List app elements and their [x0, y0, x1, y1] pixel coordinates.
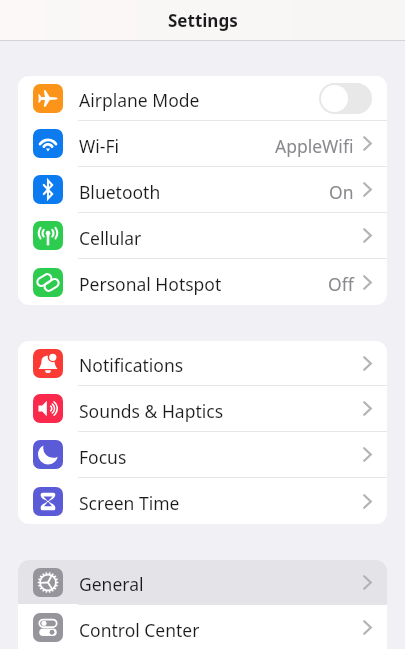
staticText: Airplane Mode	[79, 88, 200, 112]
button[interactable]: Notifications	[18, 341, 387, 385]
staticText: Personal Hotspot	[79, 272, 222, 296]
staticText: Cellular	[79, 226, 142, 250]
staticText: Sounds & Haptics	[79, 399, 224, 423]
staticText: General	[79, 572, 144, 596]
staticText: Screen Time	[79, 491, 180, 515]
staticText: AppleWifi	[275, 134, 354, 158]
staticText: Notifications	[79, 353, 184, 377]
staticText: Wi-Fi	[79, 134, 120, 158]
button[interactable]: Personal Hotspot	[18, 259, 387, 305]
staticText: Control Center	[79, 618, 200, 642]
button[interactable]: General	[18, 560, 387, 604]
button[interactable]: Screen Time	[18, 478, 387, 524]
staticText: Bluetooth	[79, 180, 161, 204]
button[interactable]: Control Center	[18, 605, 387, 649]
button[interactable]: Airplane Mode	[18, 76, 387, 120]
staticText: Settings	[168, 9, 238, 32]
button[interactable]: Wi-Fi	[18, 121, 387, 166]
staticText: On	[329, 180, 354, 204]
button[interactable]: Bluetooth	[18, 167, 387, 212]
button[interactable]: Focus	[18, 432, 387, 477]
button[interactable]: Airplane Mode switch	[319, 83, 372, 114]
staticText: Focus	[79, 445, 127, 469]
staticText: Off	[328, 272, 354, 296]
button[interactable]: Sounds & Haptics	[18, 386, 387, 431]
button[interactable]: Cellular	[18, 213, 387, 258]
